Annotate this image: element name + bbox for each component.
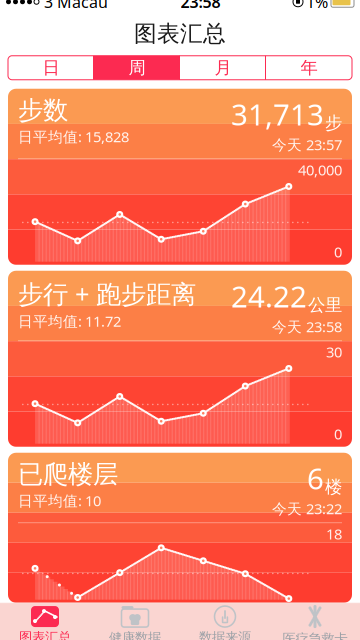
staticText: 日平均值: [18, 127, 82, 146]
staticText: 18 [316, 270, 332, 289]
button[interactable]: 健康数据 [90, 604, 180, 640]
button[interactable]: 步数 [8, 89, 352, 265]
staticText: 5月12日 [24, 270, 78, 289]
staticText: 已爬楼层 [18, 459, 118, 490]
staticText: 日平均值: [18, 311, 82, 331]
button[interactable]: 周 [94, 56, 180, 80]
staticText: 医疗急救卡 [282, 631, 347, 640]
staticText: 11.72 [85, 311, 121, 331]
staticText: 步行 + 跑步距离 [18, 277, 196, 310]
staticText: 13 [96, 270, 112, 289]
staticText: 步数 [18, 95, 68, 126]
button[interactable]: 步行 + 跑步距离 [8, 271, 352, 447]
staticText: 今天 23:58 [272, 317, 342, 336]
staticText: 23:58 [180, 0, 220, 12]
button[interactable]: 图表汇总 [0, 604, 90, 640]
staticText: 今天 23:22 [272, 499, 342, 518]
staticText: 16 [228, 270, 244, 289]
staticText: 年 [300, 57, 317, 78]
staticText: 14 [140, 270, 156, 289]
staticText: 18 [316, 452, 332, 471]
staticText: 17 [272, 270, 288, 289]
staticText: 31,713 [231, 95, 324, 134]
staticText: 14 [140, 452, 156, 471]
staticText: 1% [306, 0, 328, 12]
staticText: 日平均值: [18, 491, 82, 510]
button[interactable]: 日 [8, 56, 94, 80]
button[interactable]: 已爬楼层 [8, 453, 352, 603]
staticText: 30 [326, 342, 342, 362]
staticText: 15 [184, 452, 200, 471]
button[interactable]: 医疗急救卡 [270, 604, 360, 640]
staticText: 16 [228, 452, 244, 471]
staticText: 日 [42, 57, 59, 78]
button[interactable]: 年 [266, 56, 352, 80]
staticText: 图表汇总 [134, 20, 226, 48]
staticText: 月 [214, 57, 231, 78]
staticText: 24.22 [231, 277, 307, 316]
staticText: 步 [325, 112, 342, 134]
staticText: 周 [128, 57, 145, 78]
staticText: 今天 23:57 [272, 135, 342, 154]
staticText: 健康数据 [109, 630, 161, 640]
staticText: 0 [334, 424, 342, 444]
staticText: 13 [96, 452, 112, 471]
button[interactable]: 数据来源 [180, 604, 270, 640]
staticText: 5月12日 [24, 452, 78, 471]
staticText: 15,828 [85, 127, 129, 146]
staticText: 18 [326, 524, 342, 544]
staticText: 6 [307, 459, 324, 498]
staticText: 10 [85, 491, 101, 510]
staticText: 公里 [308, 294, 342, 316]
staticText: 17 [272, 452, 288, 471]
staticText: 40,000 [298, 160, 342, 180]
staticText: 15 [184, 270, 200, 289]
staticText: 楼 [325, 476, 342, 498]
staticText: 0 [334, 242, 342, 262]
staticText: 图表汇总 [19, 629, 71, 640]
staticText: 3 Macau [44, 0, 108, 12]
button[interactable]: 月 [180, 56, 266, 80]
staticText: 数据来源 [199, 629, 251, 640]
